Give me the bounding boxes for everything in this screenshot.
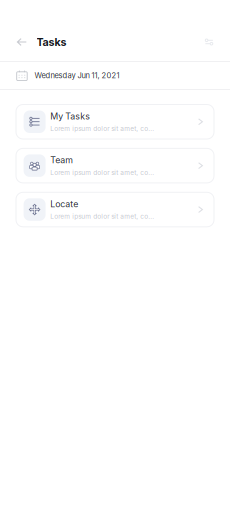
staticText: Lorem ipsum dolor sit amet, co...: [50, 212, 154, 220]
button[interactable]: Filter: [199, 32, 230, 52]
staticText: Lorem ipsum dolor sit amet, co...: [50, 125, 154, 133]
staticText: Lorem ipsum dolor sit amet, co...: [50, 169, 154, 176]
staticText: My Tasks: [50, 111, 90, 121]
staticText: Locate: [50, 199, 78, 209]
button[interactable]: My Tasks: [16, 104, 214, 139]
staticText: Tasks: [36, 35, 66, 48]
button[interactable]: Tasks: [31, 31, 70, 52]
button[interactable]: Team: [16, 148, 214, 183]
staticText: Team: [50, 155, 73, 165]
button[interactable]: Back: [0, 32, 31, 52]
button[interactable]: Locate: [16, 192, 214, 227]
staticText: Wednesday Jun 11, 2021: [34, 71, 119, 80]
